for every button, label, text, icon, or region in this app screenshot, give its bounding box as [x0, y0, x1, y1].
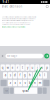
staticText: b [29, 81, 31, 85]
button[interactable]: Share extension [2, 5, 23, 8]
staticText: 9:41 [2, 0, 9, 4]
staticText: k [39, 73, 40, 77]
staticText: m [39, 81, 41, 85]
staticText: space [22, 89, 29, 92]
staticText: y [27, 66, 28, 69]
staticText: Share extension [2, 5, 23, 8]
button[interactable]: Add attachment [1, 54, 4, 58]
staticText: w [7, 66, 9, 69]
staticText: n [34, 81, 36, 85]
staticText: p [46, 66, 48, 69]
staticText: Message [7, 54, 18, 58]
button[interactable]: Message [5, 53, 43, 58]
staticText: j [34, 73, 35, 77]
button[interactable]: Account [46, 5, 48, 8]
staticText: f [20, 73, 21, 77]
staticText: g [24, 73, 26, 77]
staticText: z [10, 81, 11, 85]
staticText: a [5, 73, 6, 77]
staticText: i [37, 66, 38, 69]
staticText: s [10, 73, 11, 77]
staticText: d [14, 73, 16, 77]
staticText: l [44, 73, 45, 77]
staticText: q [2, 66, 4, 69]
staticText: v [24, 81, 25, 85]
staticText: 123 [5, 90, 8, 92]
staticText: u [31, 66, 33, 69]
staticText: x [15, 81, 16, 85]
staticText: https://example.com/shared/article-link [2, 26, 26, 28]
staticText: t [22, 66, 23, 69]
staticText: r [17, 66, 18, 69]
button[interactable]: Send [44, 53, 49, 58]
staticText: o [41, 66, 43, 69]
staticText: e [12, 66, 14, 69]
staticText: Lorem ipsum dolor sit amet, consectetur … [2, 16, 36, 21]
staticText: h [29, 73, 31, 77]
staticText: Exercitation ullamco laboris nisi ut ali… [2, 22, 31, 25]
